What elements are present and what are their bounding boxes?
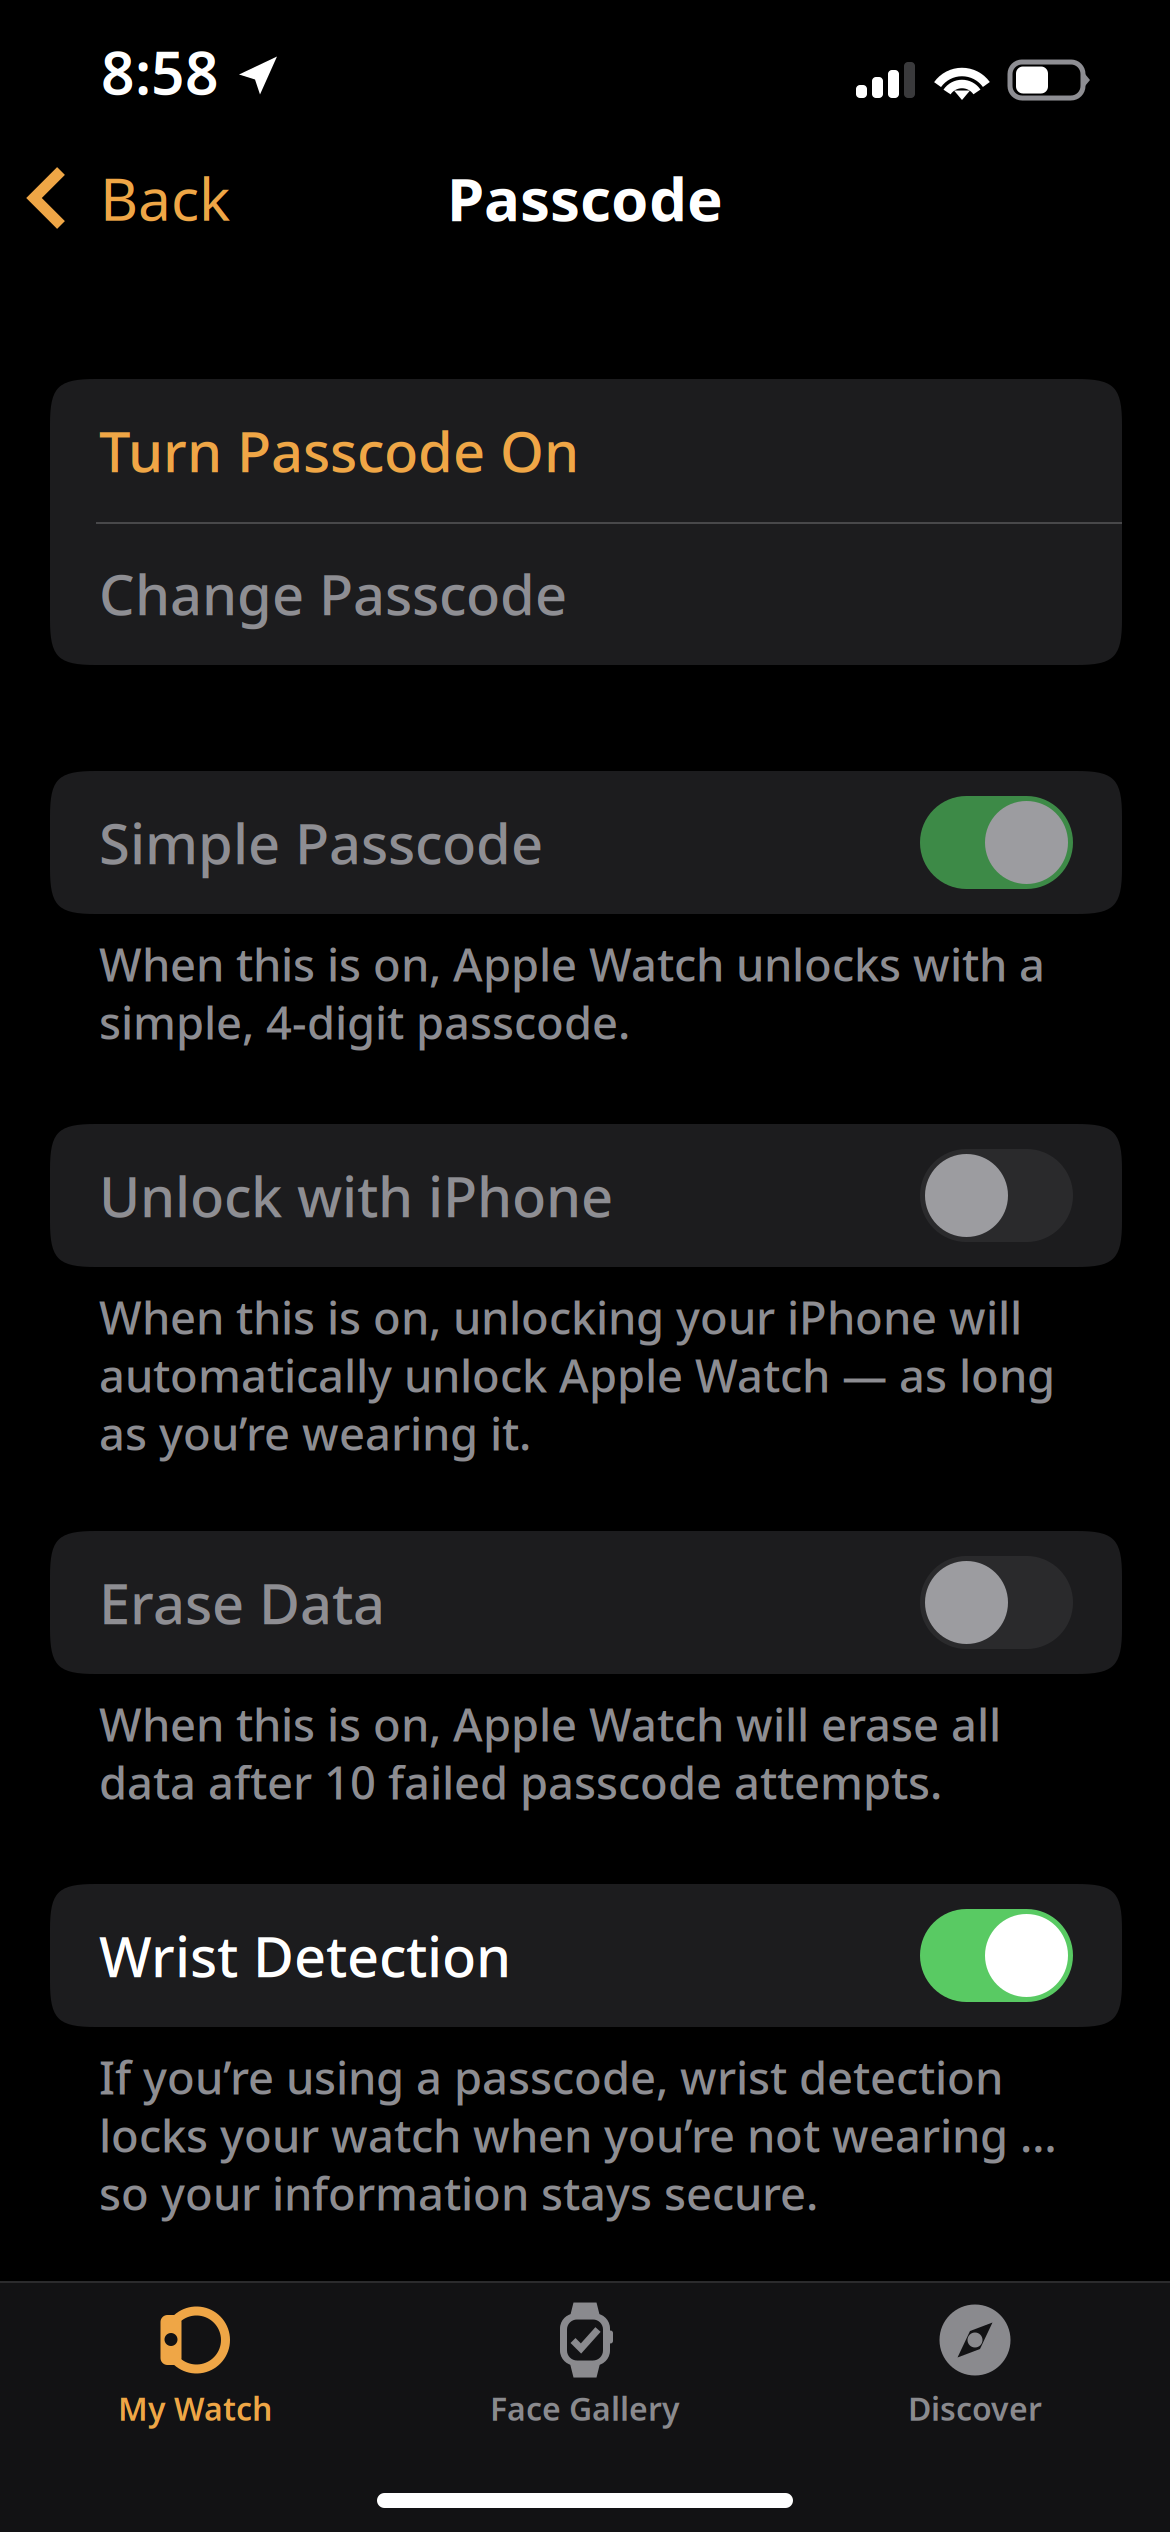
staticText: simple, 4-digit passcode.	[99, 992, 630, 1052]
button[interactable]: Face Gallery	[390, 2283, 780, 2443]
staticText: as you’re wearing it.	[99, 1403, 531, 1463]
staticText: 8:58	[101, 33, 219, 111]
staticText: If you’re using a passcode, wrist detect…	[99, 2047, 1003, 2107]
staticText: When this is on, Apple Watch unlocks wit…	[99, 934, 1045, 994]
staticText: data after 10 failed passcode attempts.	[99, 1752, 942, 1812]
staticText: Face Gallery	[490, 2387, 680, 2429]
button[interactable]: Wrist Detection	[50, 1884, 1122, 2027]
staticText: so your information stays secure.	[99, 2163, 818, 2223]
staticText: Turn Passcode On	[99, 413, 579, 488]
button[interactable]: Discover	[780, 2283, 1170, 2443]
button[interactable]: My Watch	[0, 2283, 390, 2443]
staticText: Wrist Detection	[99, 1918, 511, 1993]
button[interactable]: Simple Passcode	[50, 771, 1122, 914]
staticText: When this is on, Apple Watch will erase …	[99, 1694, 1001, 1754]
staticText: My Watch	[118, 2387, 272, 2429]
staticText: Unlock with iPhone	[99, 1158, 613, 1233]
staticText: Erase Data	[99, 1565, 385, 1640]
staticText: Back	[100, 159, 230, 237]
staticText: Simple Passcode	[99, 805, 543, 880]
button[interactable]: Erase Data	[50, 1531, 1122, 1674]
staticText: Change Passcode	[99, 556, 567, 631]
staticText: locks your watch when you’re not wearing…	[99, 2105, 1059, 2165]
button[interactable]: Turn Passcode On	[50, 379, 1122, 522]
button[interactable]: Change Passcode	[50, 522, 1122, 665]
staticText: Passcode	[447, 158, 723, 238]
staticText: Discover	[908, 2387, 1042, 2429]
button[interactable]: Back	[0, 150, 300, 246]
button[interactable]: Unlock with iPhone	[50, 1124, 1122, 1267]
staticText: automatically unlock Apple Watch — as lo…	[99, 1345, 1055, 1405]
staticText: When this is on, unlocking your iPhone w…	[99, 1287, 1022, 1347]
